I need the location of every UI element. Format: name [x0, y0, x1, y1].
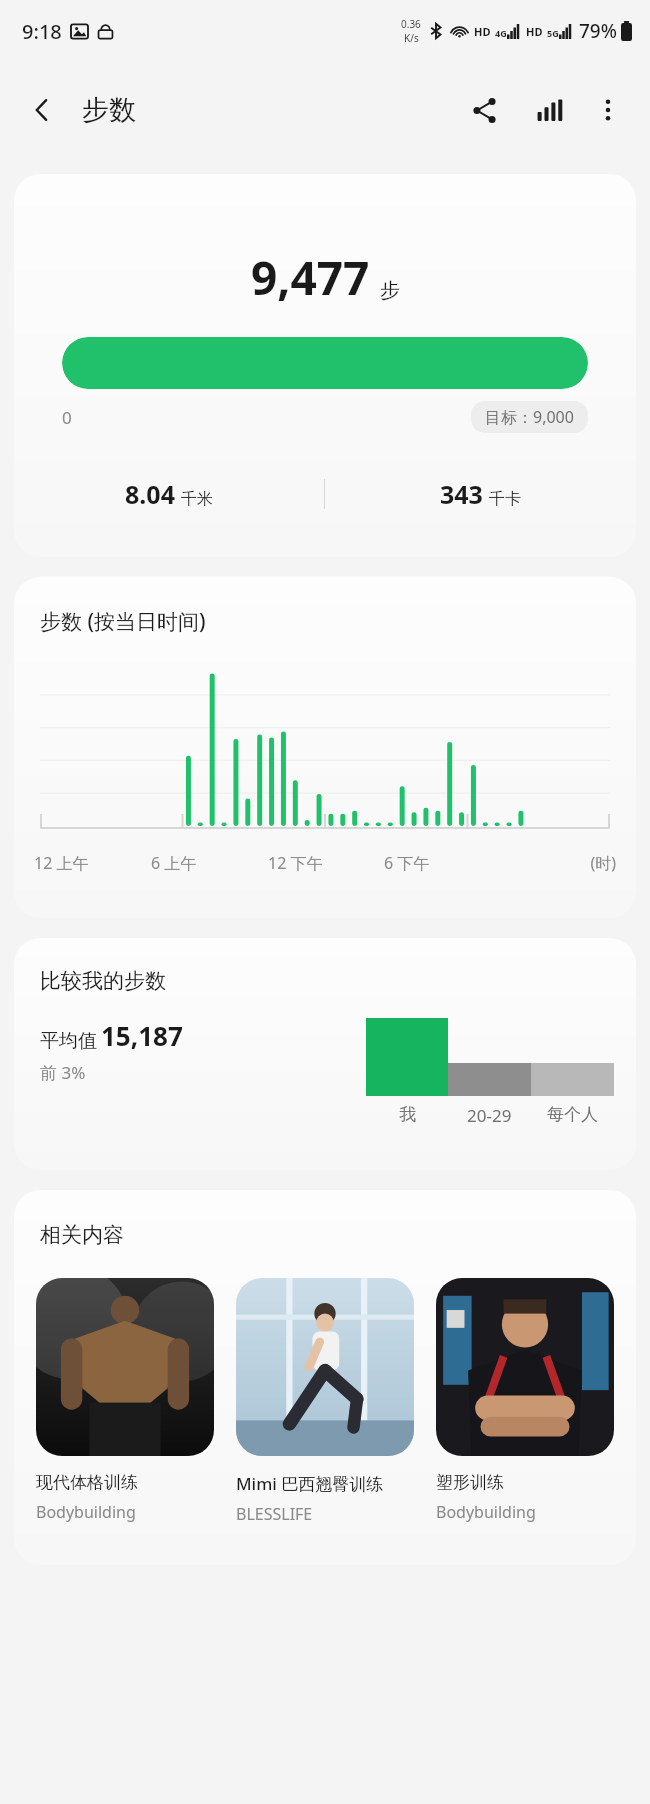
- button[interactable]: Share: [456, 82, 512, 138]
- staticText: 9:18: [22, 18, 62, 45]
- staticText: 6 下午: [384, 852, 430, 874]
- staticText: 现代体格训练: [36, 1472, 138, 1493]
- staticText: 前 3%: [40, 1061, 86, 1084]
- staticText: HD: [526, 24, 543, 39]
- staticText: 343: [440, 477, 483, 511]
- staticText: 4G: [495, 27, 507, 39]
- staticText: 每个人: [547, 1104, 598, 1125]
- staticText: Mimi 巴西翘臀训练: [236, 1472, 384, 1495]
- staticText: 9,477: [251, 246, 370, 309]
- button[interactable]: 塑形训练: [436, 1278, 614, 1523]
- staticText: BLESSLIFE: [236, 1503, 313, 1525]
- staticText: 步数 (按当日时间): [40, 607, 206, 636]
- staticText: 8.04: [125, 477, 175, 511]
- staticText: 6 上午: [151, 852, 197, 874]
- staticText: 平均值: [40, 1029, 97, 1053]
- staticText: Bodybuilding: [36, 1501, 136, 1523]
- staticText: 5G: [547, 27, 559, 39]
- staticText: 比较我的步数: [40, 968, 166, 994]
- staticText: 塑形训练: [436, 1472, 504, 1493]
- button[interactable]: Back: [14, 82, 70, 138]
- staticText: 步数: [82, 93, 136, 127]
- staticText: K/s: [404, 31, 419, 45]
- staticText: 12 下午: [268, 852, 323, 874]
- staticText: 0: [62, 406, 72, 429]
- staticText: 步: [380, 278, 400, 303]
- staticText: 相关内容: [40, 1222, 124, 1248]
- staticText: 12 上午: [34, 852, 89, 874]
- staticText: Bodybuilding: [436, 1501, 536, 1523]
- staticText: 20-29: [467, 1104, 512, 1126]
- button[interactable]: Mimi 巴西翘臀训练: [236, 1278, 414, 1525]
- staticText: 0.36: [401, 17, 421, 31]
- staticText: 我: [399, 1104, 416, 1125]
- button[interactable]: More options: [580, 82, 636, 138]
- button[interactable]: Statistics: [520, 82, 576, 138]
- staticText: 千卡: [489, 489, 521, 509]
- button[interactable]: 现代体格训练: [36, 1278, 214, 1523]
- staticText: (时): [500, 852, 616, 874]
- staticText: 79%: [579, 18, 617, 44]
- staticText: HD: [474, 24, 491, 39]
- staticText: 15,187: [101, 1018, 183, 1053]
- staticText: 目标：9,000: [485, 406, 574, 428]
- staticText: 千米: [181, 489, 213, 509]
